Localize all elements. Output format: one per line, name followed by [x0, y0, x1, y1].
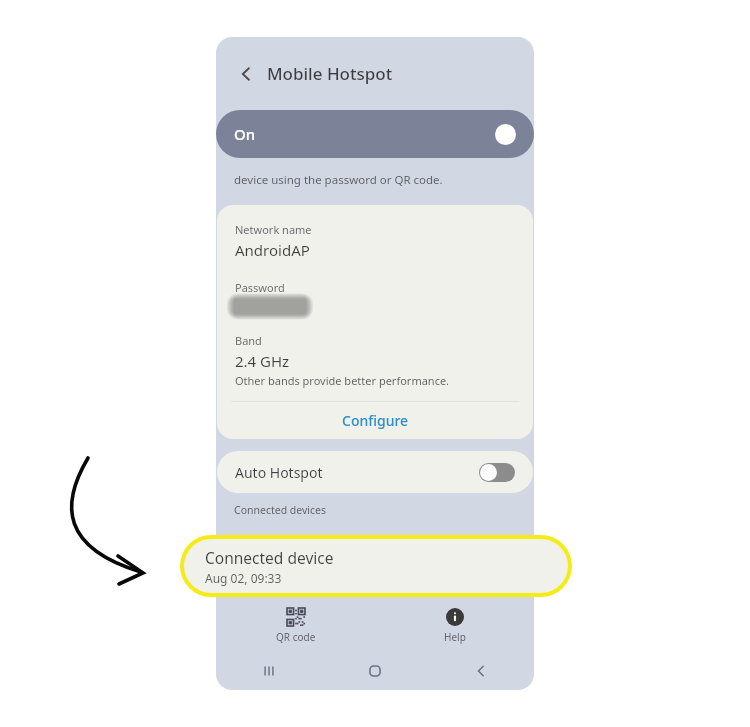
staticText: Network name — [235, 222, 312, 237]
button[interactable]: Connected device — [184, 539, 568, 593]
button[interactable]: Configure — [217, 402, 533, 439]
other: Help — [446, 608, 464, 626]
staticText: Band — [235, 333, 262, 348]
staticText: Configure — [342, 411, 409, 430]
staticText: Connected devices — [234, 503, 327, 517]
button[interactable]: Help — [375, 608, 534, 644]
staticText: Connected device — [205, 547, 334, 568]
other: QR code — [287, 608, 305, 626]
staticText: Password — [235, 280, 285, 295]
staticText: Auto Hotspot — [235, 463, 323, 482]
button[interactable]: Recents — [216, 664, 322, 678]
staticText: 2.4 GHz — [235, 351, 290, 371]
staticText: Mobile Hotspot — [267, 62, 393, 85]
button[interactable]: Home — [322, 664, 428, 678]
staticText: Help — [444, 630, 466, 644]
staticText: device using the password or QR code. — [234, 172, 443, 188]
staticText: On — [234, 124, 256, 144]
staticText: QR code — [276, 630, 316, 644]
staticText: Other bands provide better performance. — [235, 373, 450, 388]
staticText: AndroidAP — [235, 240, 310, 260]
button[interactable]: QR code — [216, 608, 375, 644]
staticText: Aug 02, 09:33 — [205, 570, 282, 586]
button[interactable]: Back — [233, 61, 259, 87]
button[interactable]: Back — [428, 664, 534, 678]
button[interactable]: Auto Hotspot — [217, 451, 533, 493]
button[interactable]: On — [216, 110, 534, 158]
